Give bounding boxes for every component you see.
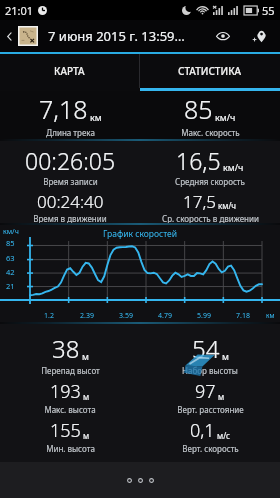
staticText: 0,1 [190, 418, 215, 443]
staticText: м [222, 350, 229, 362]
staticText: км [90, 111, 102, 123]
button[interactable]: КАРТА [0, 54, 139, 88]
staticText: км/ч [3, 227, 19, 237]
staticText: 1.2 [44, 311, 54, 321]
staticText: 2.39 [80, 311, 94, 321]
staticText: 193 [50, 379, 81, 404]
staticText: Макс. скорость [181, 127, 240, 138]
button[interactable]: More options [113, 470, 168, 491]
staticText: КАРТА [54, 64, 85, 78]
button[interactable]: 85 [140, 92, 280, 138]
button[interactable]: Back [3, 23, 16, 49]
staticText: График скоростей [103, 228, 178, 240]
staticText: Макс. высота [44, 404, 96, 415]
staticText: 97 [195, 379, 216, 404]
button[interactable]: 54 [140, 332, 280, 454]
staticText: км/ч [223, 161, 244, 173]
staticText: Верт. расстояние [177, 404, 244, 415]
staticText: 54 [192, 332, 220, 365]
staticText: 00:24:40 [37, 190, 104, 213]
staticText: 85 [6, 238, 15, 248]
button[interactable]: Show on map [210, 23, 236, 49]
staticText: м [218, 391, 225, 402]
staticText: 21 [6, 281, 15, 291]
button[interactable]: Add waypoint [246, 23, 272, 49]
staticText: 17,5 [183, 190, 216, 213]
button[interactable]: 7,18 [0, 92, 140, 138]
staticText: СТАТИСТИКА [178, 64, 242, 78]
staticText: 85 [184, 92, 213, 126]
staticText: км/ч [218, 200, 237, 211]
staticText: Время в движении [33, 213, 107, 223]
staticText: Верт. скорость [182, 443, 239, 454]
staticText: Перепад высот [41, 365, 100, 376]
staticText: 7 июня 2015 г. 13:59… [48, 27, 185, 45]
button[interactable]: СТАТИСТИКА [140, 54, 280, 88]
staticText: 21:01 [5, 3, 34, 18]
staticText: Длина трека [46, 127, 95, 138]
staticText: 7,18 [39, 92, 88, 126]
button[interactable]: 16,5 [140, 145, 280, 223]
staticText: 4.79 [158, 311, 172, 321]
staticText: 55 [262, 3, 275, 18]
staticText: км/ч [215, 111, 236, 123]
staticText: Набор высоты [182, 365, 238, 376]
staticText: 3.59 [119, 311, 133, 321]
staticText: 42 [6, 267, 15, 277]
staticText: Мин. высота [46, 443, 95, 454]
staticText: 7.18 [236, 311, 250, 321]
staticText: 5.99 [197, 311, 211, 321]
button[interactable]: 38 [0, 332, 140, 454]
staticText: 38 [52, 332, 80, 365]
staticText: Ср. скорость в движении [162, 213, 259, 223]
staticText: км [266, 311, 275, 320]
staticText: Время записи [43, 176, 98, 187]
staticText: 00:26:05 [25, 145, 116, 176]
staticText: 16,5 [176, 145, 221, 176]
staticText: м [82, 350, 89, 362]
staticText: м [83, 430, 90, 441]
staticText: 155 [50, 418, 81, 443]
staticText: м [83, 391, 90, 402]
button[interactable]: 00:26:05 [0, 145, 140, 223]
staticText: Средняя скорость [175, 176, 245, 187]
staticText: 63 [6, 253, 15, 263]
staticText: м/с [217, 430, 231, 441]
button[interactable]: Track icon [18, 26, 38, 46]
